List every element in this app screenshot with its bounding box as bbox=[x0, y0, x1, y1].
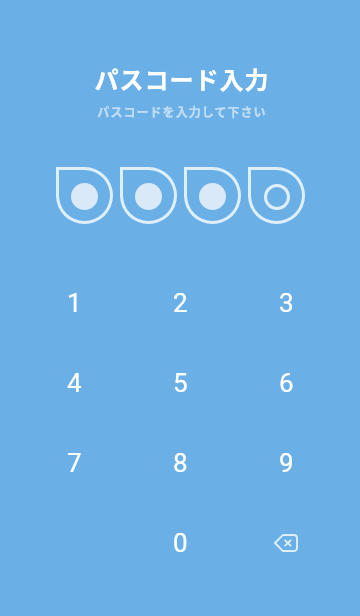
button[interactable]: 7 bbox=[34, 431, 114, 495]
staticText: 8 bbox=[173, 448, 188, 478]
staticText: 4 bbox=[67, 368, 82, 398]
staticText: 0 bbox=[173, 528, 188, 558]
button[interactable]: 0 bbox=[140, 511, 220, 575]
button[interactable]: 9 bbox=[246, 431, 326, 495]
staticText: パスコード入力 bbox=[2, 61, 360, 96]
button[interactable]: Backspace bbox=[246, 511, 326, 575]
staticText: 5 bbox=[173, 368, 188, 398]
staticText: 6 bbox=[279, 368, 294, 398]
button[interactable]: 2 bbox=[140, 271, 220, 335]
staticText: 9 bbox=[279, 448, 294, 478]
button[interactable]: 1 bbox=[34, 271, 114, 335]
staticText: 2 bbox=[173, 288, 188, 318]
staticText: 7 bbox=[67, 448, 82, 478]
staticText: パスコードを入力して下さい bbox=[2, 103, 360, 120]
button[interactable]: 4 bbox=[34, 351, 114, 415]
button[interactable]: 6 bbox=[246, 351, 326, 415]
button[interactable]: 5 bbox=[140, 351, 220, 415]
staticText: 1 bbox=[67, 288, 82, 318]
button[interactable]: 3 bbox=[246, 271, 326, 335]
button[interactable]: 8 bbox=[140, 431, 220, 495]
staticText: 3 bbox=[279, 288, 294, 318]
